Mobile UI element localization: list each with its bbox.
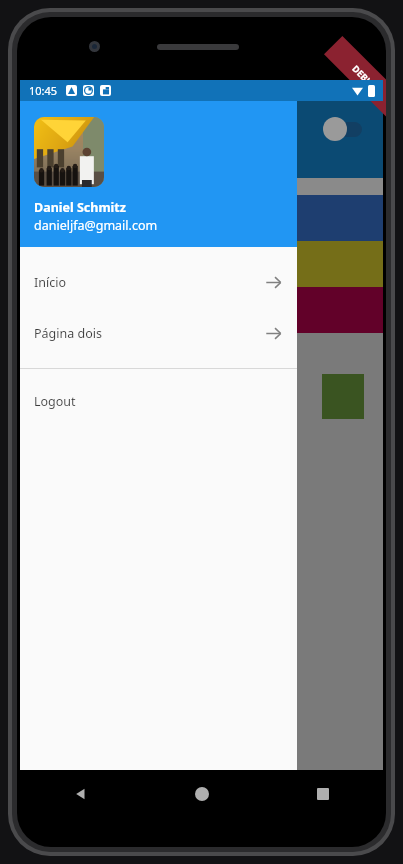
staticText: 10:45 [29, 83, 58, 98]
staticText: Daniel Schmitz [34, 199, 126, 216]
staticText: Página dois [34, 325, 102, 342]
button[interactable]: Início [20, 257, 297, 308]
button[interactable]: Back [20, 770, 141, 818]
staticText: Logout [34, 393, 76, 410]
button[interactable]: Página dois [20, 308, 297, 359]
button[interactable]: Home [141, 770, 262, 818]
button[interactable]: Recent apps [262, 770, 383, 818]
staticText: Início [34, 274, 66, 291]
button[interactable]: Profile photo [34, 117, 104, 187]
staticText: DEBUG [350, 62, 381, 93]
staticText: danieljfa@gmail.com [34, 217, 158, 234]
button[interactable]: Logout [20, 369, 297, 433]
